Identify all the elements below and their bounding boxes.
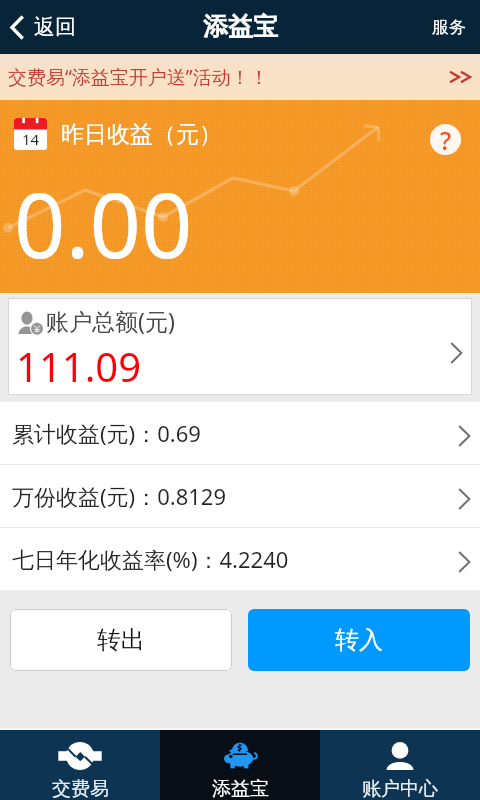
button[interactable]: 返回: [0, 6, 86, 48]
button[interactable]: 交费易: [0, 730, 160, 800]
button[interactable]: 交费易“添益宝开户送”活动！！: [0, 54, 480, 100]
button[interactable]: 服务: [418, 5, 480, 50]
staticText: 昨日收益（元）: [61, 120, 222, 149]
button[interactable]: 万份收益(元)：0.8129: [0, 464, 480, 527]
staticText: 账户总额(元): [46, 305, 175, 336]
staticText: 交费易: [52, 777, 109, 800]
button[interactable]: 七日年化收益率(%)：4.2240: [0, 527, 480, 590]
button[interactable]: 转出: [10, 609, 232, 671]
staticText: 14: [22, 129, 40, 149]
staticText: 111.09: [16, 339, 142, 393]
button[interactable]: 账户中心: [320, 730, 480, 800]
staticText: 转出: [97, 625, 145, 655]
button[interactable]: Help: [430, 124, 461, 155]
staticText: 添益宝: [203, 11, 278, 42]
staticText: 交费易“添益宝开户送”活动！！: [8, 64, 269, 90]
staticText: 0.00: [14, 162, 193, 285]
staticText: 累计收益(元)：0.69: [12, 418, 201, 448]
staticText: 转入: [335, 625, 383, 655]
button[interactable]: 累计收益(元)：0.69: [0, 402, 480, 464]
button[interactable]: 账户总额(元): [8, 298, 472, 395]
staticText: ?: [440, 124, 452, 154]
staticText: 返回: [34, 14, 76, 40]
staticText: 添益宝: [212, 777, 269, 800]
staticText: 七日年化收益率(%)：4.2240: [12, 544, 289, 574]
staticText: 万份收益(元)：0.8129: [12, 481, 227, 511]
staticText: 账户中心: [362, 777, 438, 800]
button[interactable]: 添益宝: [160, 730, 320, 800]
button[interactable]: 转入: [248, 609, 470, 671]
staticText: 服务: [432, 17, 466, 38]
